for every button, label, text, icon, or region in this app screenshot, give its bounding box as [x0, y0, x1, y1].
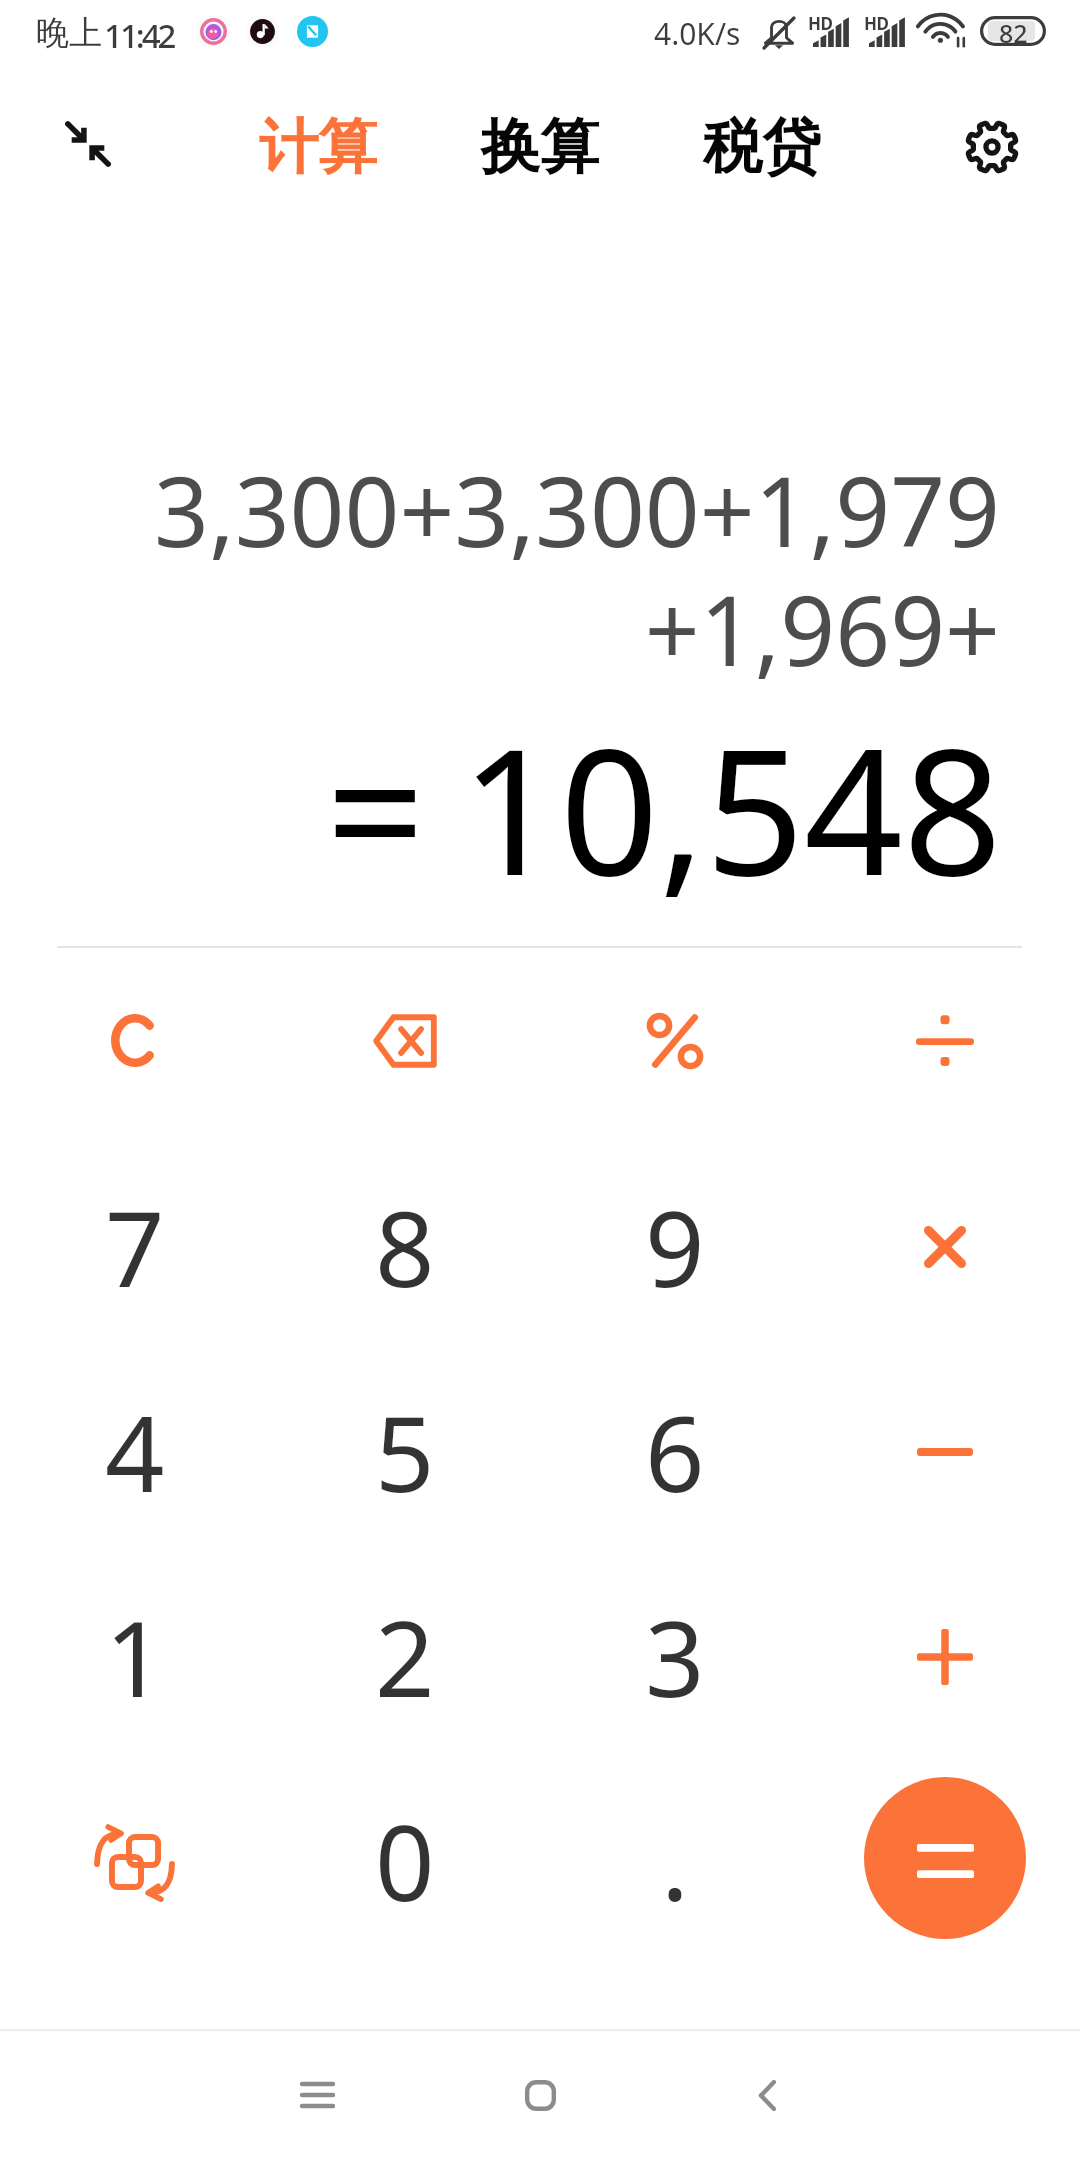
staticText: 9	[645, 1176, 705, 1318]
button[interactable]: Divide	[810, 938, 1080, 1143]
button[interactable]: Backspace	[270, 938, 540, 1143]
button[interactable]: 8	[270, 1144, 540, 1349]
button[interactable]: Multiply	[810, 1144, 1080, 1349]
staticText: 8	[375, 1176, 435, 1318]
button[interactable]: Equals	[864, 1777, 1026, 1939]
staticText: 晚上	[36, 12, 102, 54]
staticText: 4.0K/s	[654, 13, 741, 54]
button[interactable]: 6	[540, 1349, 810, 1554]
button[interactable]: Minus	[810, 1349, 1080, 1554]
staticText: HD	[808, 12, 833, 35]
button[interactable]: 换算	[469, 104, 611, 190]
button[interactable]: Home	[480, 2035, 600, 2155]
button[interactable]: 7	[0, 1144, 270, 1349]
staticText: 11:42	[104, 13, 174, 58]
staticText: 税贷	[703, 110, 821, 184]
button[interactable]: Percent	[540, 938, 810, 1143]
button[interactable]: 计算	[247, 104, 389, 190]
staticText: 82	[999, 16, 1028, 46]
staticText: 4	[105, 1381, 165, 1523]
staticText: 3	[645, 1586, 705, 1728]
button[interactable]: Plus	[810, 1554, 1080, 1759]
staticText: 1	[105, 1586, 165, 1728]
button[interactable]: 0	[270, 1758, 540, 1963]
staticText: HD	[864, 12, 889, 35]
button[interactable]: Collapse	[64, 120, 112, 168]
button[interactable]: .	[540, 1758, 810, 1963]
staticText: 10,548	[0, 690, 1002, 926]
button[interactable]: 9	[540, 1144, 810, 1349]
staticText: 7	[105, 1176, 165, 1318]
button[interactable]: 税贷	[691, 104, 833, 190]
button[interactable]: 4	[0, 1349, 270, 1554]
button[interactable]: Clear	[0, 938, 270, 1143]
staticText: 5	[375, 1381, 435, 1523]
staticText: .	[661, 1790, 689, 1932]
staticText: =	[326, 690, 425, 926]
button[interactable]: 5	[270, 1349, 540, 1554]
staticText: 换算	[481, 110, 599, 184]
button[interactable]: 3	[540, 1554, 810, 1759]
button[interactable]: Recents	[257, 2035, 377, 2155]
button[interactable]: Settings	[962, 117, 1022, 177]
staticText: 3,300+3,300+1,979 +1,969+	[0, 444, 1000, 694]
button[interactable]: 2	[270, 1554, 540, 1759]
staticText: 6	[645, 1381, 705, 1523]
button[interactable]: 1	[0, 1554, 270, 1759]
button[interactable]: Back	[707, 2035, 827, 2155]
staticText: 0	[375, 1790, 435, 1932]
staticText: 2	[375, 1586, 435, 1728]
staticText: 计算	[259, 110, 377, 184]
button[interactable]: Convert	[0, 1758, 270, 1963]
